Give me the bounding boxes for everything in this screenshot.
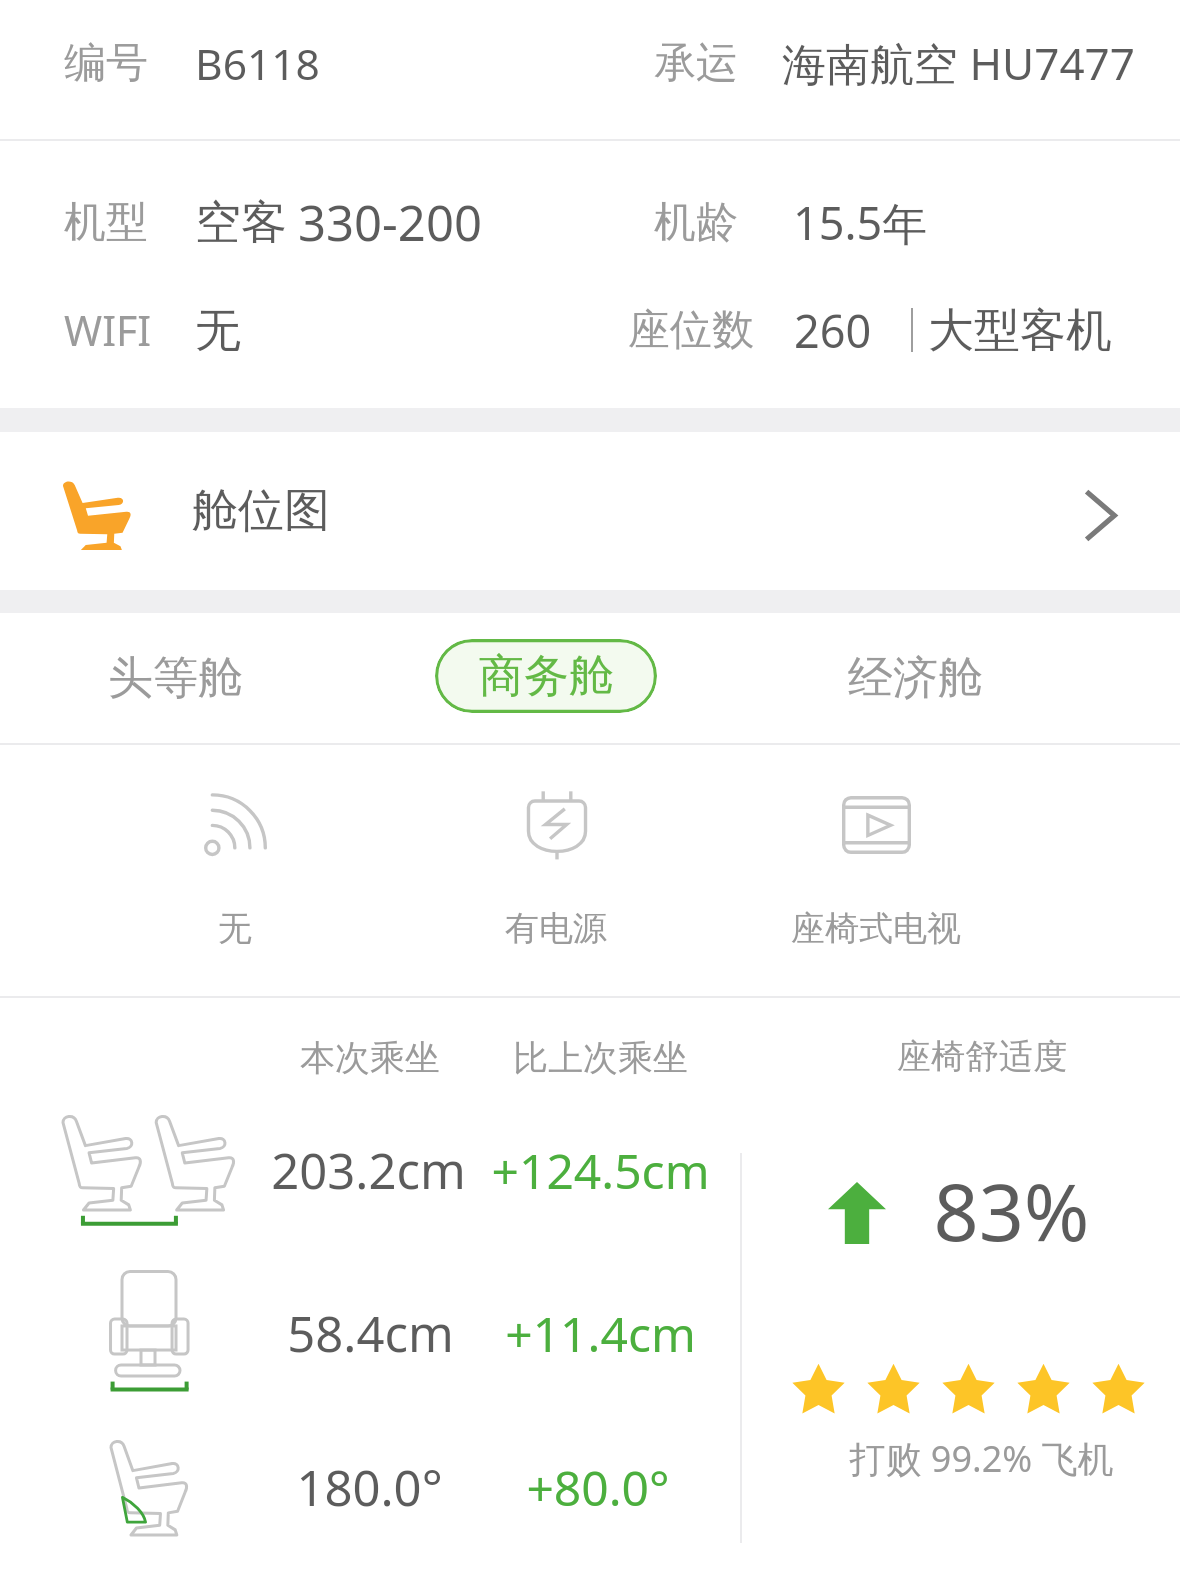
staticText: 经济舱 xyxy=(848,650,983,707)
staticText: 机型 xyxy=(64,196,148,249)
staticText: +124.5cm xyxy=(491,1138,710,1203)
staticText: 无 xyxy=(195,302,241,360)
staticText: B6118 xyxy=(195,35,320,93)
staticText: +11.4cm xyxy=(505,1301,696,1366)
staticText: 机龄 xyxy=(654,196,738,249)
staticText: WIFI xyxy=(64,302,152,358)
staticText: 承运 xyxy=(654,37,738,90)
staticText: 无 xyxy=(218,907,252,950)
button[interactable]: 座椅式电视 xyxy=(761,756,991,986)
staticText: 编号 xyxy=(64,37,148,90)
staticText: 头等舱 xyxy=(108,650,243,707)
staticText: 座椅舒适度 xyxy=(897,1035,1067,1078)
staticText: 330-200 xyxy=(298,189,482,256)
staticText: 舱位图 xyxy=(192,482,330,540)
staticText: 有电源 xyxy=(505,907,607,950)
staticText: 260 xyxy=(794,300,872,361)
button[interactable]: 头等舱 xyxy=(10,613,340,744)
button[interactable]: 商务舱 xyxy=(435,639,657,713)
staticText: 打败 99.2% 飞机 xyxy=(849,1434,1114,1483)
staticText: 15.5年 xyxy=(793,192,928,253)
staticText: 海南航空 HU7477 xyxy=(782,33,1135,93)
staticText: 座椅式电视 xyxy=(791,907,961,950)
staticText: 空客 xyxy=(195,194,287,252)
button[interactable]: 无 xyxy=(120,756,350,986)
button[interactable]: 舱位图 xyxy=(0,432,1180,590)
other: 查看舱位图 xyxy=(1084,489,1117,542)
staticText: 本次乘坐 xyxy=(300,1036,440,1080)
staticText: 比上次乘坐 xyxy=(513,1036,688,1080)
staticText: 大型客机 xyxy=(928,302,1112,360)
staticText: 座位数 xyxy=(628,304,754,357)
staticText: 203.2cm xyxy=(271,1137,466,1204)
staticText: 商务舱 xyxy=(479,648,614,705)
staticText: 180.0° xyxy=(296,1454,443,1521)
staticText: 83% xyxy=(933,1157,1090,1265)
button[interactable]: 有电源 xyxy=(442,756,672,986)
button[interactable]: 经济舱 xyxy=(750,613,1080,744)
staticText: +80.0° xyxy=(526,1455,670,1520)
staticText: 58.4cm xyxy=(287,1300,454,1367)
